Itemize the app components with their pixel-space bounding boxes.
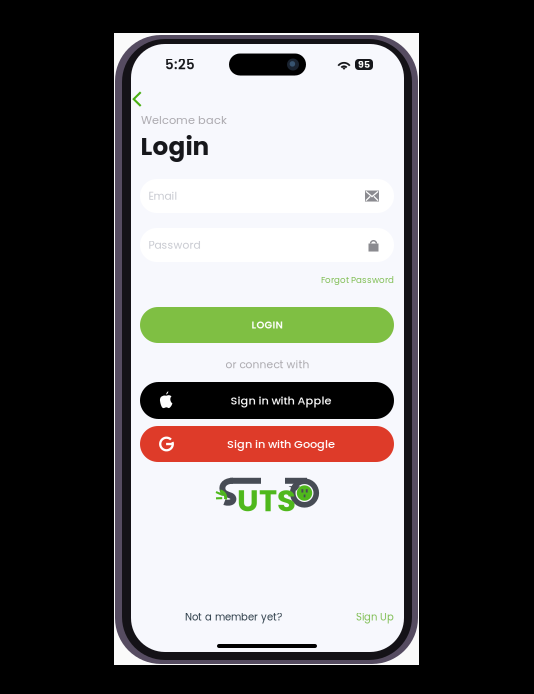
staticText: Sign in with Google <box>227 436 335 452</box>
button[interactable]: Forgot Password <box>321 274 394 286</box>
button[interactable]: LOGIN <box>140 307 394 343</box>
staticText: Sign Up <box>356 610 394 624</box>
button[interactable]: Password <box>140 228 394 262</box>
staticText: Forgot Password <box>321 274 394 286</box>
staticText: Email <box>148 188 177 203</box>
staticText: Welcome back <box>141 112 227 128</box>
staticText: or connect with <box>225 357 309 372</box>
staticText: Not a member yet? <box>185 610 282 624</box>
button[interactable]: Sign in with Google <box>140 426 394 462</box>
staticText: 5:25 <box>165 55 195 74</box>
staticText: Password <box>148 237 200 252</box>
staticText: Sign in with Apple <box>230 393 331 408</box>
button[interactable]: Email <box>140 179 394 213</box>
staticText: 95 <box>358 58 370 71</box>
staticText: UTS <box>237 479 296 522</box>
button[interactable]: Sign in with Apple <box>140 382 394 419</box>
staticText: Login <box>140 129 209 163</box>
staticText: LOGIN <box>251 318 282 332</box>
button[interactable]: Back <box>124 89 150 111</box>
button[interactable]: Sign Up <box>356 610 394 624</box>
